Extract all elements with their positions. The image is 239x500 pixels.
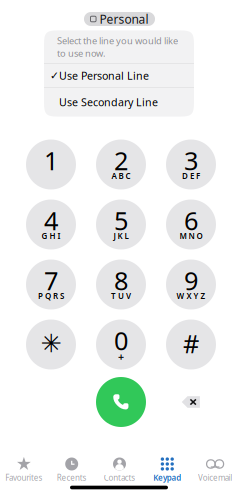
staticText: PQRS — [38, 291, 64, 301]
staticText: 1 — [44, 144, 58, 177]
staticText: Select the line you would like to use no… — [57, 34, 178, 59]
staticText: 5 — [114, 204, 128, 237]
staticText: DEF — [182, 171, 200, 181]
button[interactable]: Voicemail — [191, 455, 239, 483]
button[interactable]: Personal — [84, 12, 155, 26]
staticText: 2 — [114, 144, 128, 177]
staticText: 9 — [184, 264, 198, 297]
staticText: Personal — [99, 11, 148, 27]
button[interactable]: 4 — [26, 199, 76, 249]
button[interactable]: 8 — [96, 259, 146, 309]
staticText: WXYZ — [176, 291, 205, 301]
staticText: 0 — [114, 324, 128, 357]
staticText: 4 — [44, 204, 58, 237]
button[interactable]: # — [166, 319, 216, 369]
staticText: Use Personal Line — [59, 68, 149, 83]
button[interactable]: 6 — [166, 199, 216, 249]
staticText: 8 — [114, 264, 128, 297]
staticText: 6 — [184, 204, 198, 237]
button[interactable]: ✳ — [26, 319, 76, 369]
button[interactable]: 0 — [96, 319, 146, 369]
button[interactable]: 2 — [96, 139, 146, 189]
staticText: Keypad — [153, 472, 181, 483]
staticText: ✓ — [50, 69, 59, 81]
button[interactable]: 9 — [166, 259, 216, 309]
button[interactable]: ✓ — [44, 64, 194, 87]
staticText: Use Secondary Line — [59, 95, 158, 109]
button[interactable]: Delete — [166, 377, 216, 427]
button[interactable]: Favourites — [0, 455, 48, 483]
staticText: Recents — [57, 472, 87, 483]
button[interactable]: Use Secondary Line — [44, 88, 194, 117]
staticText: 7 — [44, 264, 58, 297]
staticText: Favourites — [5, 472, 42, 483]
staticText: + — [118, 349, 124, 364]
button[interactable]: 1 — [26, 139, 76, 189]
staticText: JKL — [113, 231, 128, 241]
button[interactable]: Contacts — [96, 455, 143, 483]
staticText: TUV — [111, 291, 131, 301]
staticText: Voicemail — [198, 472, 232, 483]
button[interactable]: Recents — [48, 455, 96, 483]
button[interactable]: 3 — [166, 139, 216, 189]
button[interactable]: 5 — [96, 199, 146, 249]
staticText: ✳ — [40, 329, 61, 358]
staticText: ABC — [111, 171, 130, 181]
button[interactable]: Keypad — [143, 455, 191, 483]
staticText: GHI — [41, 231, 60, 241]
staticText: 3 — [184, 144, 198, 177]
staticText: # — [183, 327, 199, 360]
button[interactable]: 7 — [26, 259, 76, 309]
staticText: MNO — [179, 231, 202, 241]
button[interactable]: Call — [96, 377, 146, 427]
staticText: Contacts — [104, 472, 135, 483]
